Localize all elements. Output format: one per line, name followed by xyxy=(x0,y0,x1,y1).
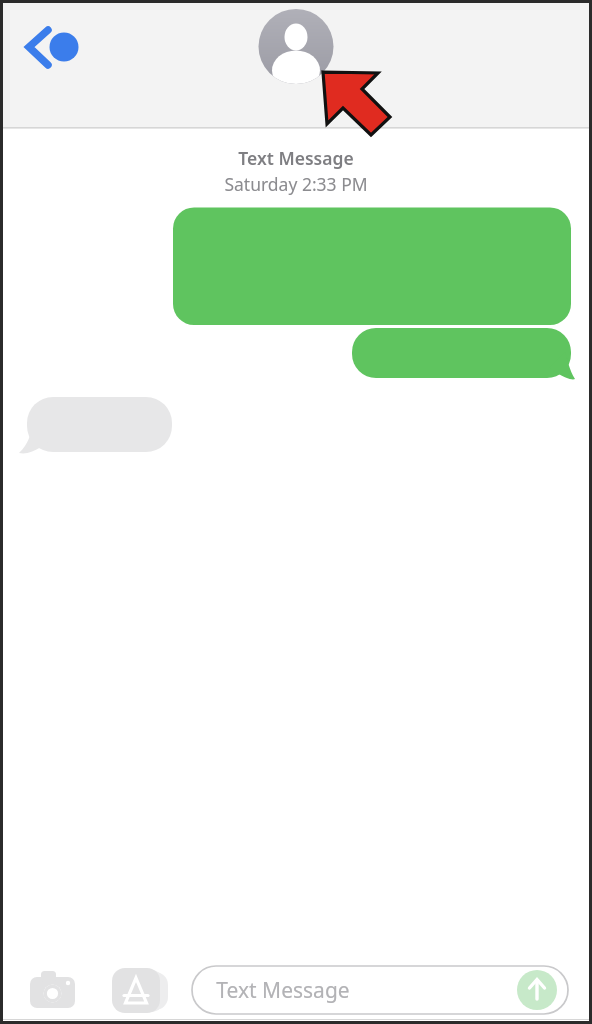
staticText: Text Message xyxy=(238,146,354,170)
button[interactable]: Back to conversations, 4 unread xyxy=(14,20,84,74)
button[interactable]: Apps xyxy=(108,964,172,1016)
button[interactable]: Camera xyxy=(22,964,84,1016)
button[interactable]: Contact details xyxy=(257,6,337,86)
button[interactable] xyxy=(352,328,575,380)
button[interactable] xyxy=(192,966,568,1014)
staticText: Saturday 2:33 PM xyxy=(224,172,368,196)
button[interactable] xyxy=(173,207,571,325)
staticText: Text Message xyxy=(216,976,350,1005)
button[interactable]: Send xyxy=(517,970,557,1010)
button[interactable] xyxy=(19,397,172,453)
